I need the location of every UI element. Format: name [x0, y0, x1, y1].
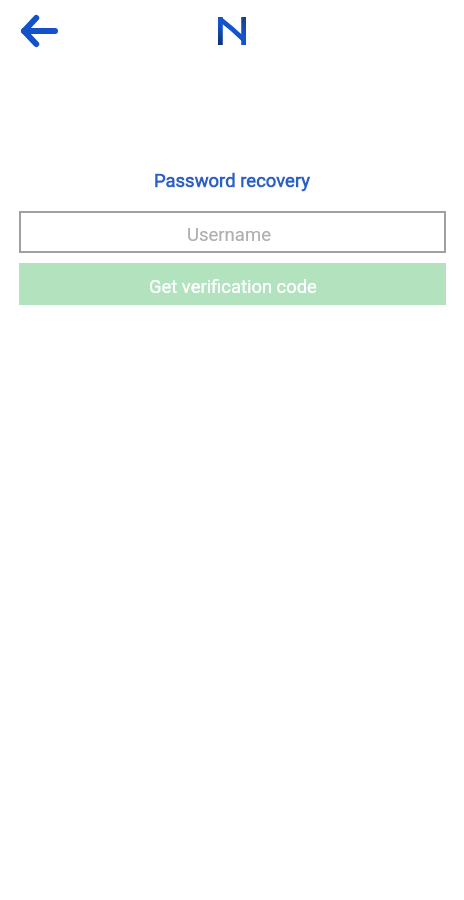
- button[interactable]: Username: [19, 211, 446, 253]
- button[interactable]: Back: [9, 3, 69, 59]
- button[interactable]: Get verification code: [19, 263, 446, 305]
- staticText: Password recovery: [0, 170, 464, 192]
- other: Logo: [218, 17, 246, 45]
- staticText: Get verification code: [149, 276, 317, 298]
- staticText: Username: [187, 224, 271, 246]
